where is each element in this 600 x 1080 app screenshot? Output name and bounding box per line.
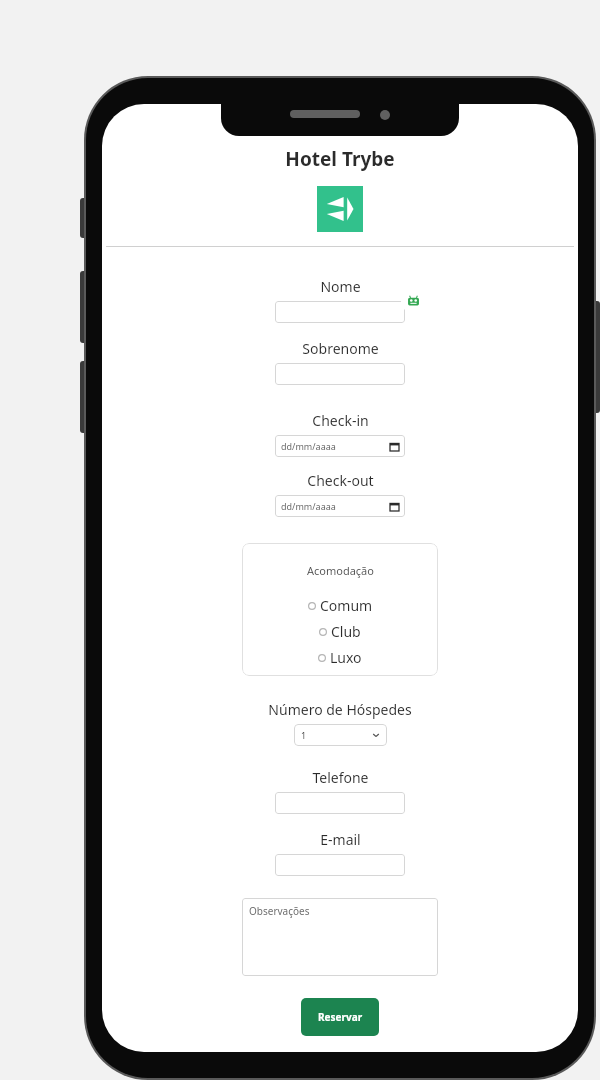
staticText: Sobrenome <box>302 339 379 358</box>
staticText: Club <box>331 622 361 641</box>
button[interactable]: dd/mm/aaaa <box>275 495 405 517</box>
button[interactable]: dd/mm/aaaa <box>275 435 405 457</box>
staticText: Observações <box>249 904 310 918</box>
staticText: Reservar <box>318 1010 363 1024</box>
button[interactable]: Luxo <box>318 648 362 667</box>
staticText: dd/mm/aaaa <box>281 440 336 452</box>
staticText: Nome <box>320 277 361 296</box>
button[interactable] <box>275 363 405 385</box>
staticText: E-mail <box>320 830 361 849</box>
staticText: Luxo <box>330 648 362 667</box>
staticText: Acomodação <box>307 563 374 578</box>
button[interactable]: Club <box>319 622 361 641</box>
button[interactable]: 1 <box>294 724 387 746</box>
button[interactable]: Comum <box>308 596 373 615</box>
staticText: dd/mm/aaaa <box>281 500 336 512</box>
staticText: Comum <box>320 596 373 615</box>
staticText: Check-in <box>312 411 369 430</box>
staticText: Número de Hóspedes <box>268 700 412 719</box>
button[interactable]: Hotel Trybe logo <box>317 186 363 232</box>
button[interactable] <box>275 301 405 323</box>
button[interactable] <box>275 854 405 876</box>
staticText: Telefone <box>312 768 369 787</box>
button[interactable]: Autofill <box>401 289 425 313</box>
staticText: 1 <box>301 729 307 741</box>
button[interactable]: Observações <box>242 898 438 976</box>
button[interactable]: Reservar <box>301 998 379 1036</box>
staticText: Check-out <box>307 471 374 490</box>
staticText: Hotel Trybe <box>285 146 395 172</box>
button[interactable] <box>275 792 405 814</box>
